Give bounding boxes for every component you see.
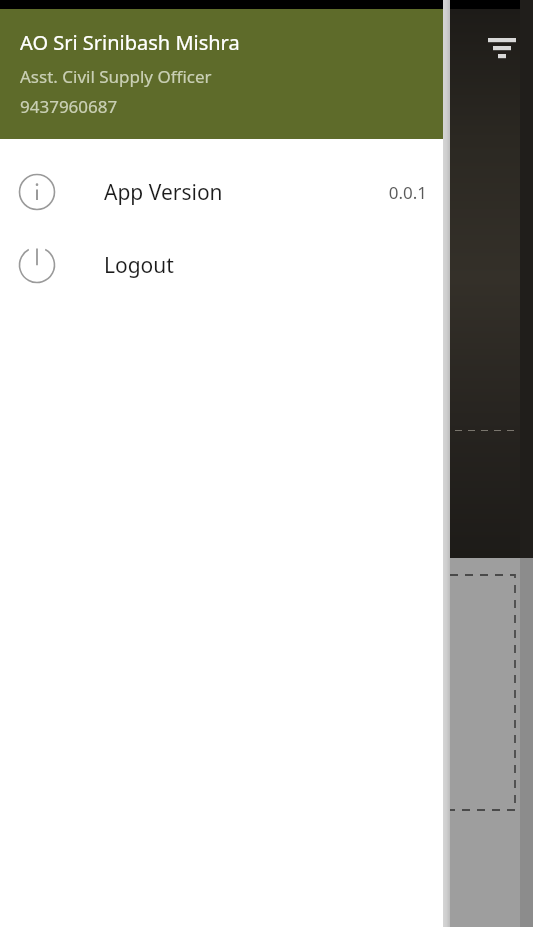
staticText: 0.0.1: [388, 181, 427, 204]
staticText: AO Sri Srinibash Mishra: [20, 29, 240, 56]
button[interactable]: Logout: [0, 242, 443, 288]
button[interactable]: Draft: [300, 575, 515, 810]
button[interactable]: App version info: [0, 169, 443, 215]
staticText: 9437960687: [20, 95, 118, 118]
staticText: App Version: [104, 178, 223, 207]
staticText: Logout: [104, 251, 174, 280]
other: App version info: [18, 173, 56, 211]
other: Logout: [18, 246, 56, 284]
button[interactable]: Filter: [478, 24, 526, 72]
button[interactable]: AO Sri Srinibash Mishra: [0, 9, 443, 139]
staticText: Asst. Civil Supply Officer: [20, 65, 212, 88]
